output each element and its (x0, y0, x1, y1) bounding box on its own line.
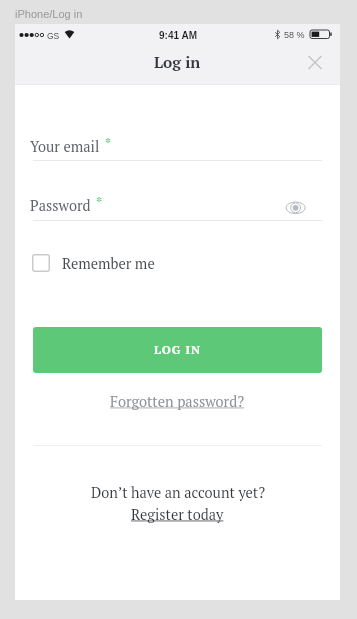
staticText: * (96, 193, 103, 210)
staticText: Remember me (62, 254, 155, 273)
staticText: Log in (154, 52, 201, 73)
button[interactable]: Register today (15, 499, 340, 529)
staticText: * (105, 134, 112, 151)
staticText: Don’t have an account yet? (91, 483, 265, 502)
button[interactable]: LOG IN (33, 327, 322, 373)
button[interactable] (300, 48, 330, 78)
staticText: LOG IN (154, 342, 202, 358)
staticText: Forgotten password? (110, 392, 245, 411)
staticText: Register today (131, 505, 224, 524)
staticText: Your email (30, 137, 100, 156)
staticText: GS (47, 31, 60, 40)
staticText: 9:41 AM (159, 30, 197, 41)
button[interactable]: Forgotten password? (15, 386, 340, 416)
staticText: Password (30, 196, 91, 215)
staticText: iPhone/Log in (15, 8, 83, 20)
button[interactable] (281, 192, 310, 219)
button[interactable]: Remember me (32, 252, 155, 274)
staticText: 58 % (284, 30, 305, 40)
